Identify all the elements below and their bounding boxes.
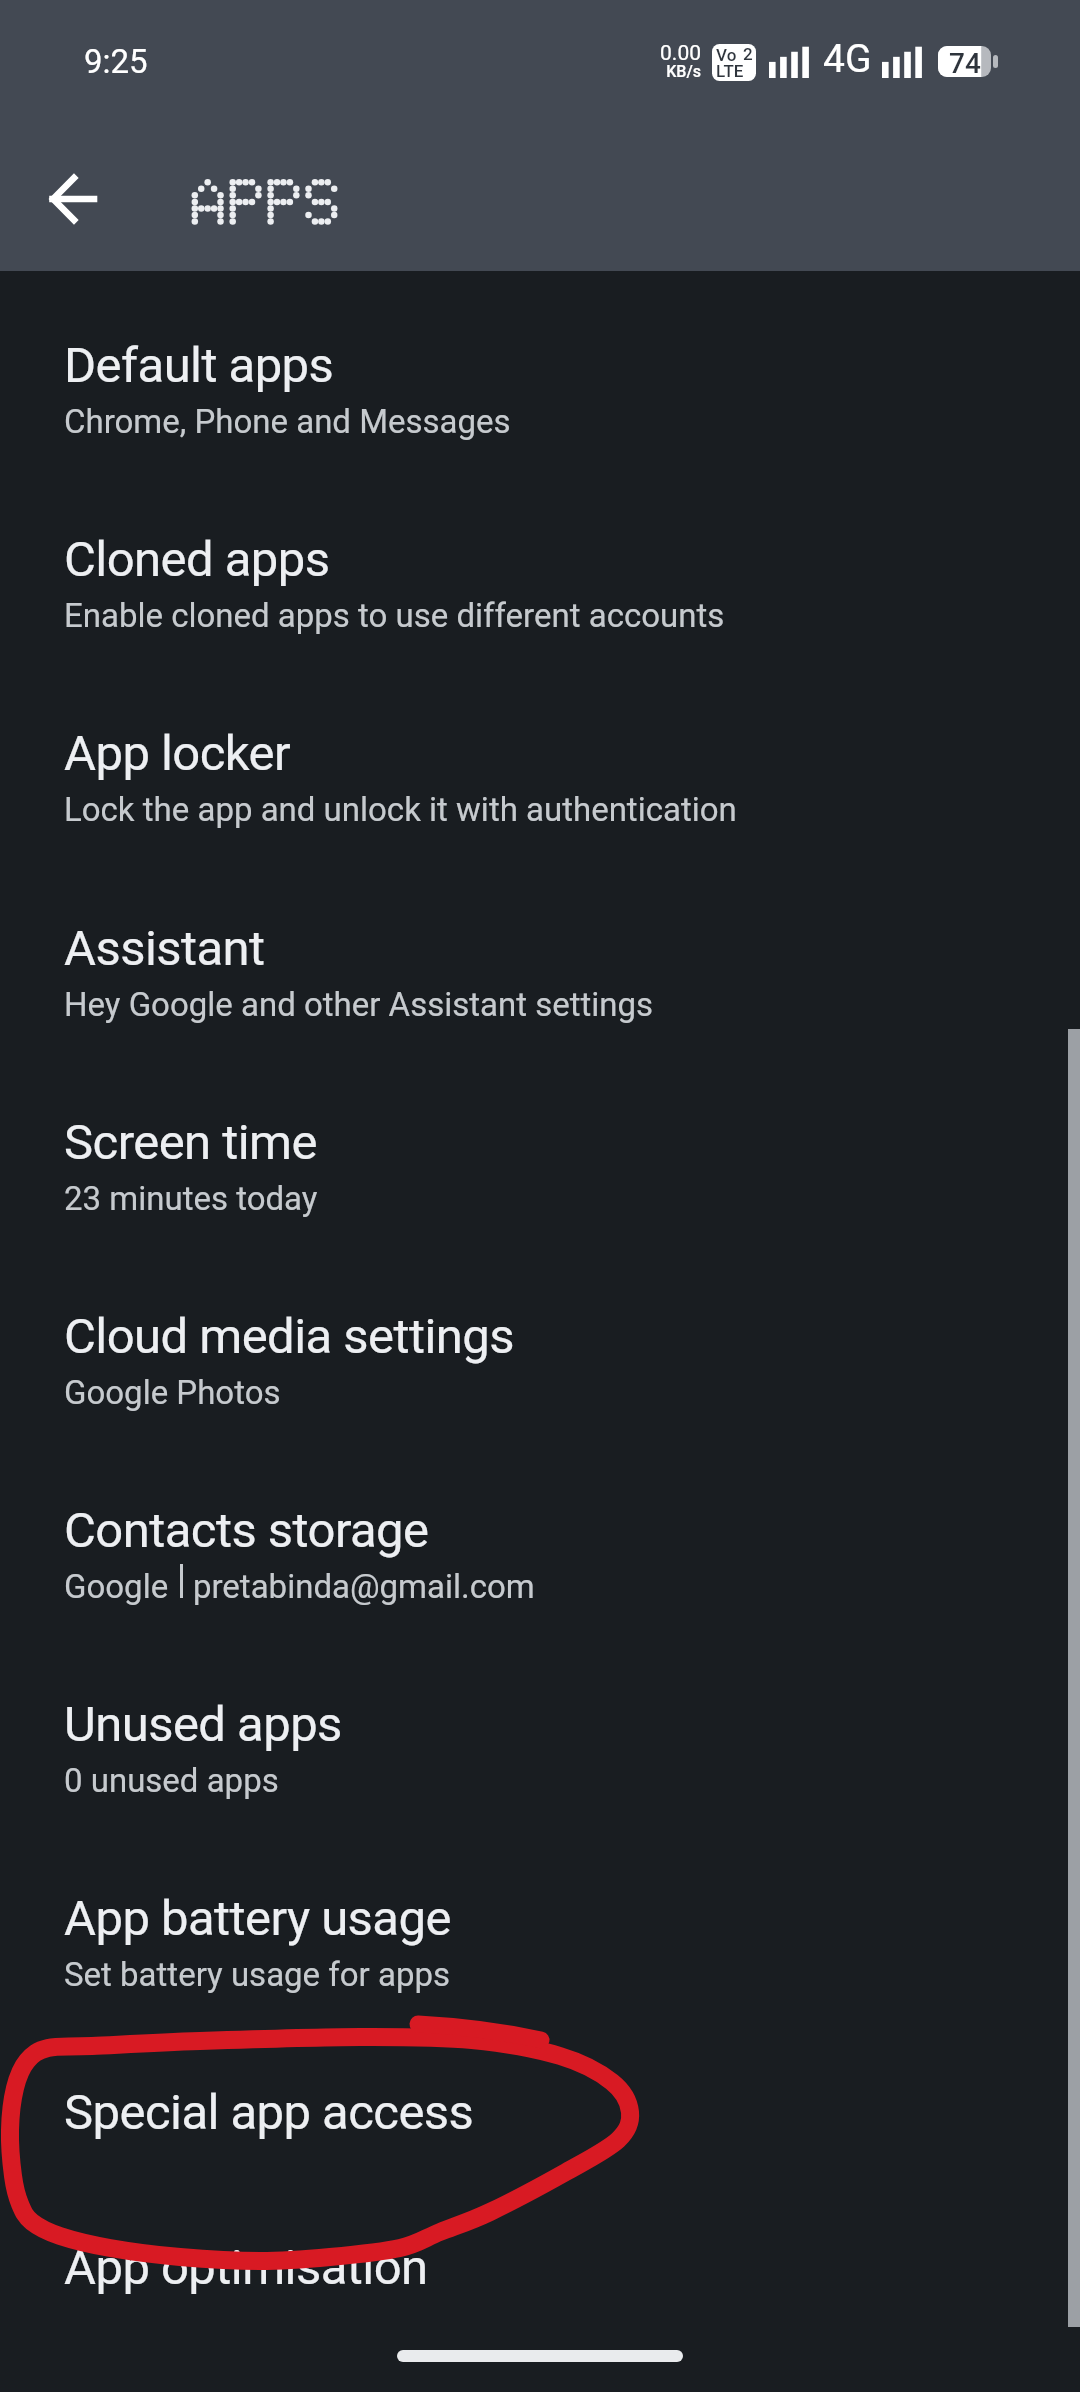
staticText: LTE (716, 61, 744, 81)
staticText: Google pretabinda@gmail.com (64, 1567, 535, 1606)
staticText: Set battery usage for apps (64, 1955, 451, 1994)
staticText: Google Photos (64, 1373, 281, 1412)
staticText: 2 (743, 44, 753, 64)
staticText: 23 minutes today (64, 1179, 318, 1218)
button[interactable]: Default apps (0, 272, 1080, 466)
button[interactable]: App battery usage (0, 1825, 1080, 2019)
staticText: Chrome, Phone and Messages (64, 402, 511, 441)
staticText: 9:25 (84, 42, 148, 81)
staticText: App optimisation (64, 2239, 428, 2296)
staticText: 74 (949, 47, 981, 78)
staticText: Screen time (64, 1114, 317, 1171)
button[interactable]: Special app access (0, 2019, 1080, 2174)
staticText: App battery usage (64, 1890, 451, 1947)
button[interactable]: App locker (0, 660, 1080, 854)
button[interactable]: Unused apps (0, 1631, 1080, 1825)
staticText: Default apps (64, 337, 334, 394)
button[interactable]: Assistant (0, 855, 1080, 1049)
staticText: Cloud media settings (64, 1308, 514, 1365)
staticText: App locker (64, 725, 291, 782)
staticText: Lock the app and unlock it with authenti… (64, 790, 737, 829)
button[interactable]: Cloned apps (0, 466, 1080, 660)
staticText: Vo (716, 45, 737, 65)
button[interactable]: App optimisation (0, 2174, 1080, 2329)
staticText: Cloned apps (64, 531, 330, 588)
staticText: Contacts storage (64, 1502, 429, 1559)
staticText: 0 unused apps (64, 1761, 279, 1800)
button[interactable]: Screen time (0, 1049, 1080, 1243)
staticText: 0.00 (611, 41, 701, 66)
staticText: 4G (823, 36, 872, 82)
staticText: Enable cloned apps to use different acco… (64, 596, 725, 635)
staticText: Unused apps (64, 1696, 342, 1753)
button[interactable]: Cloud media settings (0, 1243, 1080, 1437)
staticText: Assistant (64, 920, 265, 977)
button[interactable]: Contacts storage (0, 1437, 1080, 1631)
staticText: KB/s (611, 62, 701, 81)
staticText: Hey Google and other Assistant settings (64, 985, 654, 1024)
staticText: Special app access (64, 2084, 474, 2141)
button[interactable]: Back (25, 151, 121, 247)
